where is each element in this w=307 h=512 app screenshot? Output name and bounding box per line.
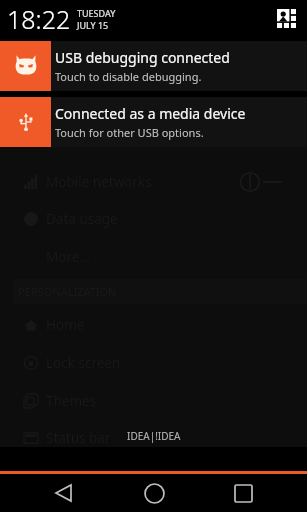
staticText: IDEA|!IDEA xyxy=(127,429,181,443)
button[interactable]: Recents xyxy=(223,474,263,512)
staticText: Touch for other USB options. xyxy=(55,125,204,140)
staticText: TUESDAY xyxy=(77,7,116,19)
staticText: Themes xyxy=(46,392,97,410)
button[interactable]: Back xyxy=(43,474,83,512)
staticText: 18:22 xyxy=(7,2,71,36)
staticText: JULY 15 xyxy=(77,19,109,31)
staticText: USB debugging connected xyxy=(55,48,230,67)
staticText: Connected as a media device xyxy=(55,104,246,123)
button[interactable]: Quick settings xyxy=(274,6,299,31)
button[interactable]: USB debugging connected xyxy=(0,41,307,91)
staticText: Data usage xyxy=(46,210,118,228)
staticText: Status bar xyxy=(46,429,111,447)
staticText: Lock screen xyxy=(46,354,121,372)
staticText: Mobile networks xyxy=(46,173,152,191)
button[interactable]: Status bar xyxy=(0,419,307,456)
button[interactable]: Connected as a media device xyxy=(0,97,307,147)
staticText: Touch to disable debugging. xyxy=(55,69,202,84)
button[interactable]: Home xyxy=(134,474,174,512)
